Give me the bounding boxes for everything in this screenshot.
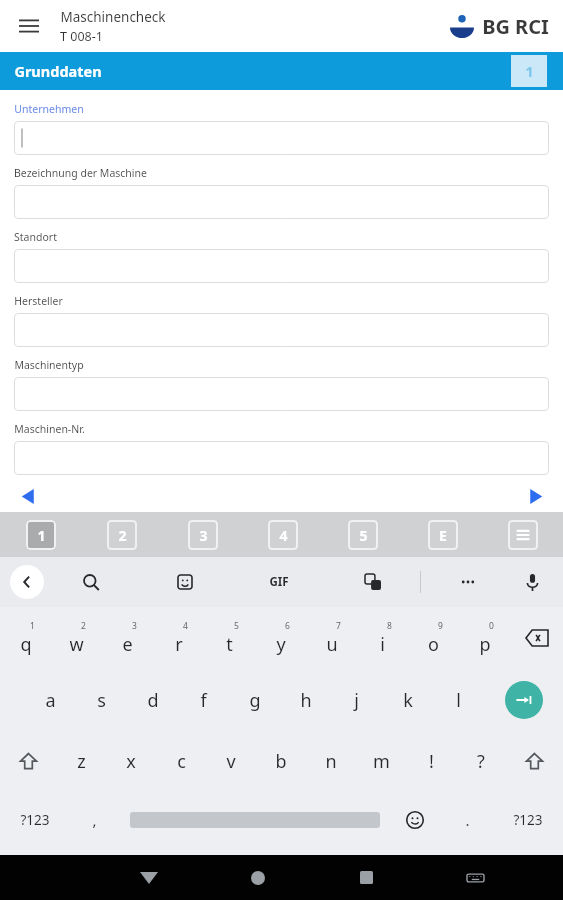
staticText: x	[126, 749, 136, 774]
button[interactable]: 2	[51, 607, 102, 669]
staticText: Hersteller	[14, 294, 63, 308]
button[interactable]: v	[206, 731, 256, 791]
button[interactable]: Stickers	[168, 565, 202, 599]
button[interactable]: GIF	[259, 562, 299, 602]
button[interactable]	[14, 185, 549, 219]
button[interactable]: 6	[255, 607, 306, 669]
button[interactable]: ?123	[493, 791, 563, 849]
button[interactable]: j	[331, 669, 382, 731]
button[interactable]: s	[76, 669, 127, 731]
button[interactable]: 4	[153, 607, 204, 669]
staticText: ?123	[20, 811, 50, 829]
staticText: 7	[336, 620, 341, 632]
button[interactable]: Enter	[484, 669, 563, 731]
button[interactable]: a	[25, 669, 76, 731]
button[interactable]: Back	[94, 855, 203, 900]
staticText: a	[45, 688, 56, 713]
button[interactable]: 0	[459, 607, 510, 669]
button[interactable]: Grunddaten	[14, 61, 102, 81]
button[interactable]	[14, 313, 549, 347]
staticText: ?	[477, 749, 485, 774]
button[interactable]	[14, 121, 549, 155]
button[interactable]: 3	[102, 607, 153, 669]
button[interactable]: Backspace	[510, 607, 563, 669]
button[interactable]: .	[441, 791, 493, 849]
button[interactable]: 1	[0, 607, 51, 669]
button[interactable]: !	[406, 731, 456, 791]
button[interactable]: Recent apps	[312, 855, 421, 900]
button[interactable]: Search	[74, 565, 108, 599]
staticText: s	[97, 688, 106, 713]
staticText: ?123	[513, 811, 543, 829]
button[interactable]: b	[256, 731, 306, 791]
button[interactable]: l	[433, 669, 484, 731]
button[interactable]: ?	[456, 731, 506, 791]
button[interactable]: d	[127, 669, 178, 731]
staticText: Grunddaten	[14, 61, 102, 81]
button[interactable]: 2	[107, 520, 137, 550]
button[interactable]: 7	[306, 607, 357, 669]
button[interactable]: Translate	[356, 565, 390, 599]
button[interactable]: Next	[521, 482, 549, 510]
staticText: 5	[234, 620, 239, 632]
button[interactable]: h	[280, 669, 331, 731]
button[interactable]: BG RCI	[447, 11, 549, 41]
staticText: q	[20, 632, 32, 657]
button[interactable]: k	[382, 669, 433, 731]
button[interactable]: Space	[120, 791, 389, 849]
staticText: 1	[37, 526, 46, 545]
staticText: d	[147, 688, 159, 713]
button[interactable]: Previous	[14, 482, 42, 510]
staticText: j	[354, 688, 359, 713]
button[interactable]: Overview	[508, 520, 538, 550]
staticText: l	[456, 688, 461, 713]
button[interactable]: Back	[10, 565, 44, 599]
button[interactable]	[14, 377, 549, 411]
button[interactable]: Shift	[0, 731, 56, 791]
button[interactable]: Voice input	[515, 565, 549, 599]
staticText: ,	[92, 810, 97, 830]
staticText: 4	[183, 620, 188, 632]
staticText: w	[69, 632, 84, 657]
staticText: GIF	[269, 574, 289, 590]
button[interactable]: Emoji	[389, 791, 441, 849]
button[interactable]: ,	[69, 791, 120, 849]
staticText: e	[122, 632, 133, 657]
button[interactable]: m	[356, 731, 406, 791]
button[interactable]: z	[56, 731, 106, 791]
staticText: 0	[489, 620, 494, 632]
button[interactable]: Switch keyboard	[421, 855, 530, 900]
button[interactable]: 5	[204, 607, 255, 669]
button[interactable]: 4	[268, 520, 298, 550]
staticText: g	[249, 688, 261, 713]
button[interactable]: 9	[408, 607, 459, 669]
button[interactable]: E	[428, 520, 458, 550]
button[interactable]: g	[229, 669, 280, 731]
button[interactable]: f	[178, 669, 229, 731]
staticText: z	[77, 749, 86, 774]
button[interactable]: 8	[357, 607, 408, 669]
staticText: !	[429, 749, 434, 774]
button[interactable]: Shift	[506, 731, 563, 791]
staticText: 9	[438, 620, 443, 632]
staticText: 3	[132, 620, 137, 632]
button[interactable]: 1	[26, 520, 56, 550]
button[interactable]: Menu	[12, 9, 46, 43]
button[interactable]: x	[106, 731, 156, 791]
staticText: 2	[118, 526, 127, 545]
button[interactable]: ?123	[0, 791, 69, 849]
button[interactable]: c	[156, 731, 206, 791]
button[interactable]: 1	[511, 55, 547, 87]
staticText: E	[439, 526, 447, 545]
staticText: f	[200, 688, 207, 713]
staticText: 2	[81, 620, 86, 632]
button[interactable]: More options	[451, 565, 485, 599]
button[interactable]	[14, 249, 549, 283]
button[interactable]	[14, 441, 549, 475]
button[interactable]: Home	[203, 855, 312, 900]
button[interactable]: n	[306, 731, 356, 791]
staticText: i	[380, 632, 385, 657]
button[interactable]: 3	[188, 520, 218, 550]
button[interactable]: 5	[348, 520, 378, 550]
staticText: k	[403, 688, 413, 713]
